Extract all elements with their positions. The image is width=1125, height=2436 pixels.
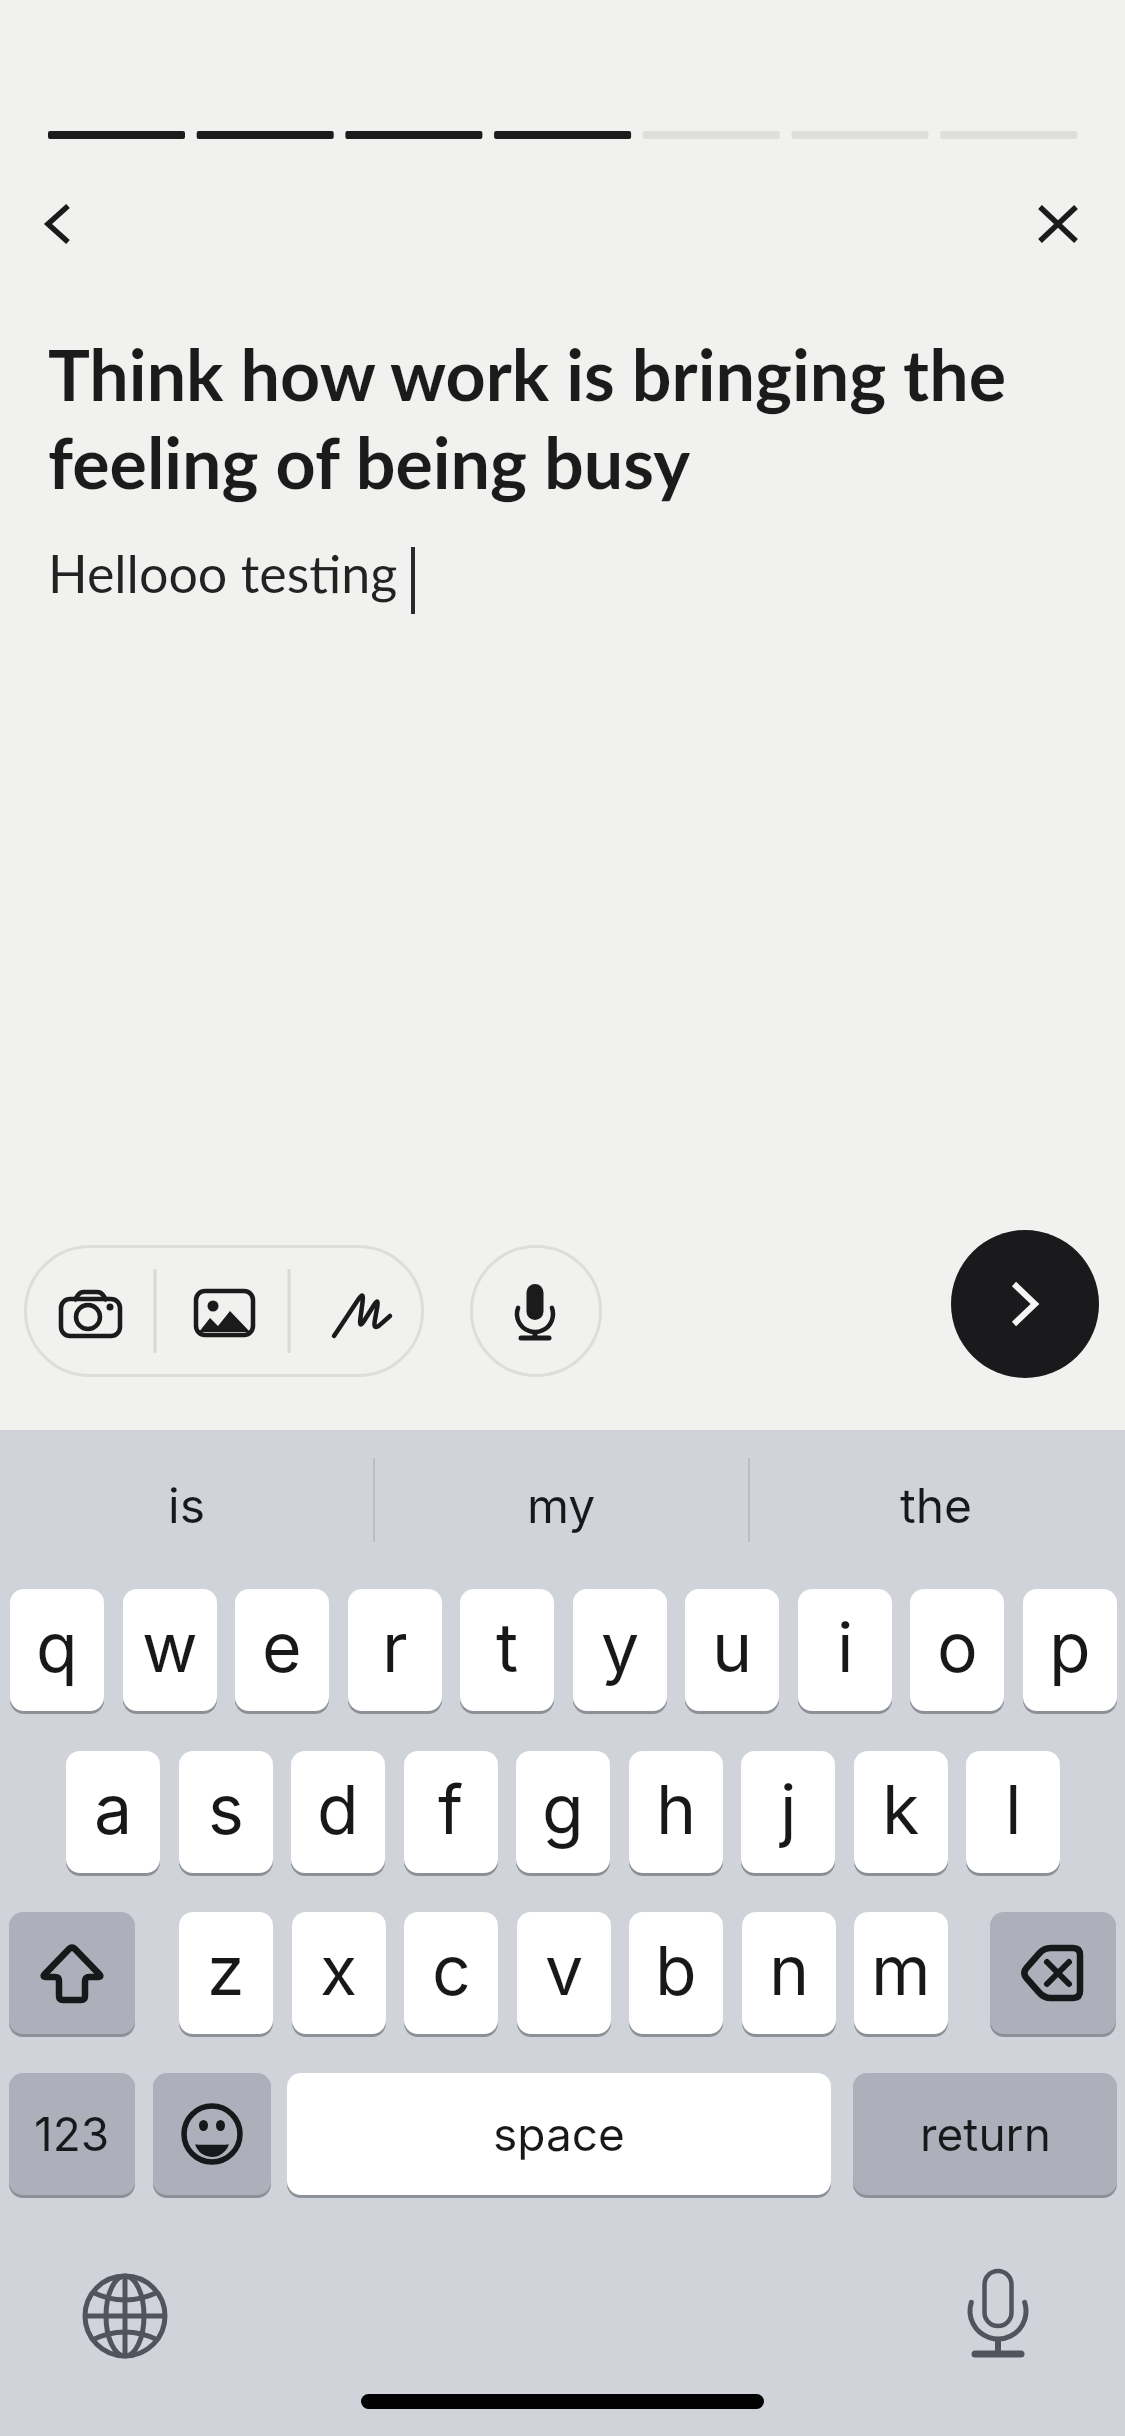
staticText: feeling of being busy — [48, 420, 691, 504]
button[interactable]: z — [179, 1912, 273, 2034]
staticText: a — [94, 1768, 133, 1850]
button[interactable] — [28, 1249, 154, 1373]
button[interactable]: l — [966, 1751, 1060, 1873]
button[interactable]: q — [10, 1589, 104, 1711]
staticText: z — [207, 1929, 245, 2011]
button[interactable]: o — [910, 1589, 1004, 1711]
staticText: k — [882, 1768, 920, 1850]
staticText: v — [545, 1929, 584, 2011]
button[interactable]: d — [291, 1751, 385, 1873]
button[interactable] — [292, 1249, 418, 1373]
button[interactable]: a — [66, 1751, 160, 1873]
button[interactable]: t — [460, 1589, 554, 1711]
button[interactable]: v — [517, 1912, 611, 2034]
button[interactable]: is — [0, 1445, 373, 1565]
button[interactable] — [990, 1912, 1116, 2034]
button[interactable]: i — [798, 1589, 892, 1711]
button[interactable]: x — [292, 1912, 386, 2034]
button[interactable] — [470, 1245, 602, 1377]
button[interactable]: s — [179, 1751, 273, 1873]
staticText: m — [871, 1929, 931, 2011]
button[interactable] — [153, 2073, 271, 2195]
staticText: h — [656, 1768, 697, 1850]
staticText: j — [780, 1768, 797, 1850]
staticText: the — [900, 1476, 973, 1534]
button[interactable] — [938, 2256, 1058, 2376]
button[interactable]: return — [853, 2073, 1117, 2195]
staticText: e — [262, 1606, 302, 1688]
button[interactable]: space — [287, 2073, 831, 2195]
staticText: f — [438, 1768, 464, 1850]
staticText: 123 — [34, 2106, 110, 2162]
staticText: Hellooo testing — [48, 542, 398, 604]
button[interactable] — [65, 2256, 185, 2376]
button[interactable]: the — [750, 1445, 1123, 1565]
button[interactable]: g — [516, 1751, 610, 1873]
staticText: space — [493, 2106, 625, 2162]
staticText: b — [655, 1929, 697, 2011]
button[interactable]: r — [348, 1589, 442, 1711]
button[interactable]: k — [854, 1751, 948, 1873]
button[interactable]: u — [685, 1589, 779, 1711]
staticText: g — [542, 1768, 584, 1850]
button[interactable]: e — [235, 1589, 329, 1711]
button[interactable]: 123 — [9, 2073, 135, 2195]
staticText: return — [920, 2106, 1051, 2162]
staticText: p — [1049, 1606, 1091, 1688]
button[interactable] — [158, 1249, 284, 1373]
staticText: my — [527, 1476, 596, 1534]
button[interactable]: m — [854, 1912, 948, 2034]
button[interactable]: w — [123, 1589, 217, 1711]
staticText: n — [769, 1929, 810, 2011]
staticText: o — [937, 1606, 978, 1688]
staticText: u — [712, 1606, 753, 1688]
button[interactable] — [22, 188, 94, 260]
button[interactable] — [9, 1912, 135, 2034]
staticText: w — [142, 1606, 198, 1688]
staticText: Think how work is bringing the — [48, 332, 1007, 416]
staticText: c — [432, 1929, 471, 2011]
staticText: s — [208, 1768, 244, 1850]
button[interactable]: f — [404, 1751, 498, 1873]
button[interactable] — [951, 1230, 1099, 1378]
staticText: r — [382, 1606, 408, 1688]
button[interactable]: y — [573, 1589, 667, 1711]
button[interactable]: my — [375, 1445, 748, 1565]
button[interactable]: b — [629, 1912, 723, 2034]
staticText: q — [36, 1606, 78, 1688]
staticText: d — [317, 1768, 359, 1850]
staticText: l — [1005, 1768, 1022, 1850]
button[interactable] — [1022, 188, 1094, 260]
button[interactable]: j — [741, 1751, 835, 1873]
staticText: t — [496, 1606, 519, 1688]
staticText: i — [837, 1606, 854, 1688]
staticText: y — [601, 1606, 640, 1688]
staticText: x — [320, 1929, 358, 2011]
button[interactable]: h — [629, 1751, 723, 1873]
button[interactable]: p — [1023, 1589, 1117, 1711]
button[interactable]: c — [404, 1912, 498, 2034]
button[interactable]: n — [742, 1912, 836, 2034]
staticText: is — [168, 1476, 205, 1534]
